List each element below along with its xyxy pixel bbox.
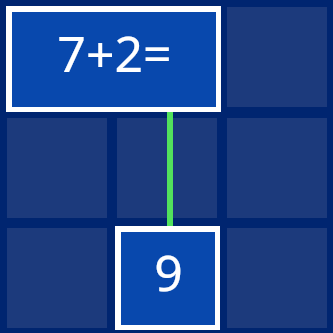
staticText: 7+2= <box>57 19 172 87</box>
button[interactable]: 9 <box>115 226 220 330</box>
staticText: 9 <box>154 238 183 306</box>
button[interactable]: 7+2= <box>6 6 221 112</box>
button[interactable]: Empty slot row 2 column 2 <box>117 118 217 218</box>
button[interactable]: Empty slot row 1 column 1 <box>7 7 107 107</box>
button[interactable]: Empty slot row 3 column 2 <box>117 228 217 328</box>
button[interactable]: Empty slot row 1 column 2 <box>117 7 217 107</box>
